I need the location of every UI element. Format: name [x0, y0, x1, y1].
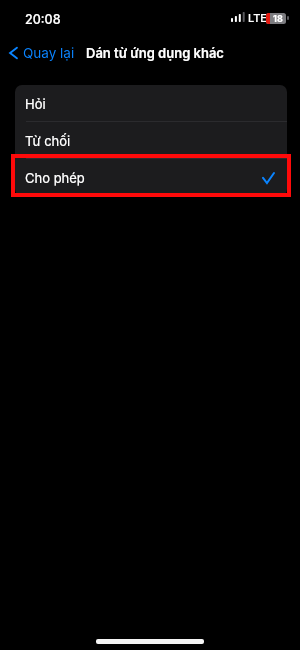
button[interactable]: Cho phép [15, 159, 287, 196]
staticText: Dán từ ứng dụng khác [86, 45, 224, 61]
staticText: LTE [248, 11, 267, 24]
staticText: Cho phép [25, 170, 85, 186]
staticText: 20:08 [25, 12, 61, 27]
staticText: 18 [273, 13, 283, 24]
other: Selected [263, 173, 274, 183]
other: Back [9, 46, 18, 60]
staticText: Từ chối [25, 133, 71, 149]
button[interactable]: Hỏi [15, 85, 287, 122]
staticText: Quay lại [23, 45, 75, 61]
button[interactable]: Back [5, 42, 79, 64]
button[interactable]: Từ chối [15, 122, 287, 159]
other: Cellular signal [231, 12, 247, 22]
staticText: Hỏi [25, 96, 46, 112]
